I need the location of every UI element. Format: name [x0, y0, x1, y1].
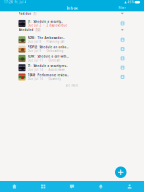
staticText: Filter	[118, 6, 125, 10]
button[interactable]: Profile	[115, 181, 144, 192]
staticText: Due Jul 14 · Access review	[28, 68, 65, 71]
staticText: Due Jul 16 · Quarterly	[28, 77, 61, 81]
staticText: Inbox	[66, 5, 77, 10]
button[interactable]: Alerts	[86, 181, 115, 192]
button[interactable]: FLOW: The Ambassador…	[0, 35, 144, 44]
staticText: Scheduled	[18, 28, 33, 32]
staticText: See more	[65, 84, 78, 87]
staticText: Due Jul 9 · Onboarding	[28, 49, 64, 53]
button[interactable]: TEAM: Performance review…	[0, 72, 144, 81]
staticText: IT: Schedule a security…	[28, 20, 63, 23]
staticText: Past due	[18, 12, 31, 15]
button[interactable]: Past due	[0, 11, 144, 18]
staticText: 17:28	[4, 0, 13, 4]
staticText: Due Jul 8 · Planning call	[28, 40, 65, 43]
button[interactable]: Browse	[29, 181, 58, 192]
button[interactable]: IT: Schedule a security rev…	[0, 63, 144, 72]
staticText: IT: Schedule a security rev…	[28, 64, 68, 68]
button[interactable]: New task	[115, 166, 126, 178]
button[interactable]: PEOPLE: Schedule an onbo…	[0, 44, 144, 53]
button[interactable]: Messages	[58, 181, 86, 192]
button[interactable]: Scheduled	[0, 28, 144, 35]
staticText: Due Jul 11 · Outreach	[28, 59, 61, 62]
button[interactable]: See more	[0, 81, 144, 89]
staticText: 12	[36, 28, 40, 32]
button[interactable]: FLOW: Schedule a call with…	[0, 53, 144, 63]
staticText: 46%	[128, 0, 134, 4]
button[interactable]: Filter	[117, 5, 127, 10]
button[interactable]: IT: Schedule a security…	[0, 18, 144, 28]
staticText: TEAM: Performance review…	[28, 73, 69, 77]
button[interactable]: Home	[0, 181, 29, 192]
staticText: Due Jul 2 · 2 days overdue	[28, 24, 68, 27]
staticText: Fri, Jul 4	[14, 0, 26, 4]
staticText: FLOW: The Ambassador…	[28, 36, 65, 40]
staticText: 1	[34, 12, 36, 15]
staticText: PEOPLE: Schedule an onbo…	[28, 45, 69, 49]
staticText: FLOW: Schedule a call with…	[28, 55, 69, 58]
